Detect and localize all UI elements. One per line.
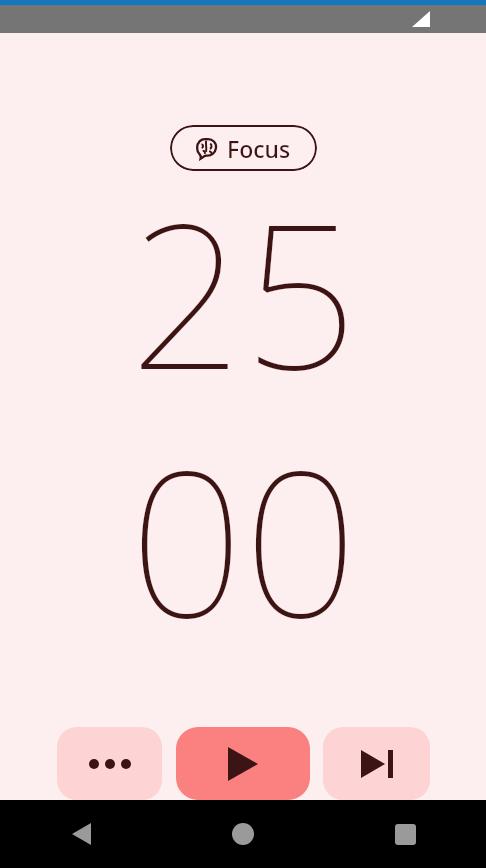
button[interactable]: Start timer: [176, 727, 310, 800]
button[interactable]: Back: [0, 800, 162, 868]
staticText: 25: [129, 155, 358, 427]
staticText: 00: [129, 403, 358, 675]
button[interactable]: Recent apps: [324, 800, 486, 868]
button[interactable]: Focus: [170, 125, 317, 171]
staticText: Focus: [227, 133, 291, 164]
button[interactable]: Home: [162, 800, 324, 868]
button[interactable]: Skip to next: [323, 727, 430, 800]
button[interactable]: More options: [57, 727, 162, 800]
